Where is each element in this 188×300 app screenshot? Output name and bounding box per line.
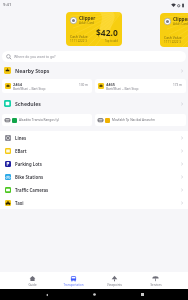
staticText: Bart/Muni – Bart Stop: [106, 87, 139, 91]
staticText: Tap to add: [105, 39, 118, 43]
button[interactable]: Schedules: [0, 95, 188, 112]
button[interactable]: Taxi: [0, 196, 188, 209]
staticText: 173 m: [173, 83, 183, 87]
button[interactable]: Clipper: [66, 12, 122, 46]
button[interactable]: Traffic Cameras: [0, 183, 188, 196]
other: Back: [45, 293, 49, 297]
staticText: 130 m: [79, 83, 89, 87]
staticText: Lines: [15, 135, 27, 141]
staticText: Movfakh Tp Nacibal Anaschn: [112, 118, 155, 122]
button[interactable]: Services: [135, 272, 176, 289]
staticText: Guide: [28, 283, 37, 287]
button[interactable]: Alsadito Tranvia Rangos (y): [2, 114, 92, 126]
staticText: Transportation: [63, 283, 84, 287]
staticText: EBart: [15, 148, 27, 154]
staticText: Services: [150, 283, 162, 287]
staticText: Viewpoints: [107, 283, 122, 287]
staticText: Adult Card: [173, 22, 188, 26]
staticText: Taxi: [15, 200, 24, 206]
button[interactable]: EBart: [0, 144, 188, 157]
button[interactable]: Viewpoints: [94, 272, 135, 289]
staticText: Alsadito Tranvia Rangos (y): [19, 118, 60, 122]
staticText: 4465: [106, 82, 116, 87]
button[interactable]: 2464: [2, 79, 92, 93]
staticText: Clipper: [173, 16, 188, 22]
staticText: Cash Value: [70, 34, 88, 39]
staticText: Traffic Cameras: [15, 187, 49, 193]
staticText: 1111 2222 3: [164, 40, 182, 44]
staticText: Cash Value: [164, 35, 182, 40]
staticText: 9:41: [3, 2, 12, 8]
staticText: Schedules: [15, 100, 41, 107]
button[interactable]: Movfakh Tp Nacibal Anaschn: [95, 114, 186, 126]
staticText: 1111 2222 3: [70, 39, 88, 43]
staticText: 2464: [13, 82, 23, 87]
button[interactable]: Transportation: [53, 272, 94, 289]
button[interactable]: Guide: [12, 272, 53, 289]
staticText: Clipper: [79, 15, 96, 21]
button[interactable]: Lines: [0, 131, 188, 144]
button[interactable]: Where do you want to go?: [2, 51, 186, 62]
staticText: Bart/Muni – Bart Stop: [13, 87, 46, 91]
other: Home: [93, 293, 96, 296]
staticText: Nearby Stops: [15, 67, 50, 74]
button[interactable]: Bike Stations: [0, 170, 188, 183]
staticText: Adult Card: [79, 21, 94, 25]
staticText: Where do you want to go?: [14, 54, 56, 59]
staticText: $42.0: [96, 27, 118, 39]
button[interactable]: Nearby Stops: [0, 62, 188, 79]
button[interactable]: 4465: [95, 79, 186, 93]
staticText: Bike Stations: [15, 174, 44, 180]
button[interactable]: Clipper: [160, 13, 188, 47]
button[interactable]: Parking Lots: [0, 157, 188, 170]
staticText: Parking Lots: [15, 161, 42, 167]
